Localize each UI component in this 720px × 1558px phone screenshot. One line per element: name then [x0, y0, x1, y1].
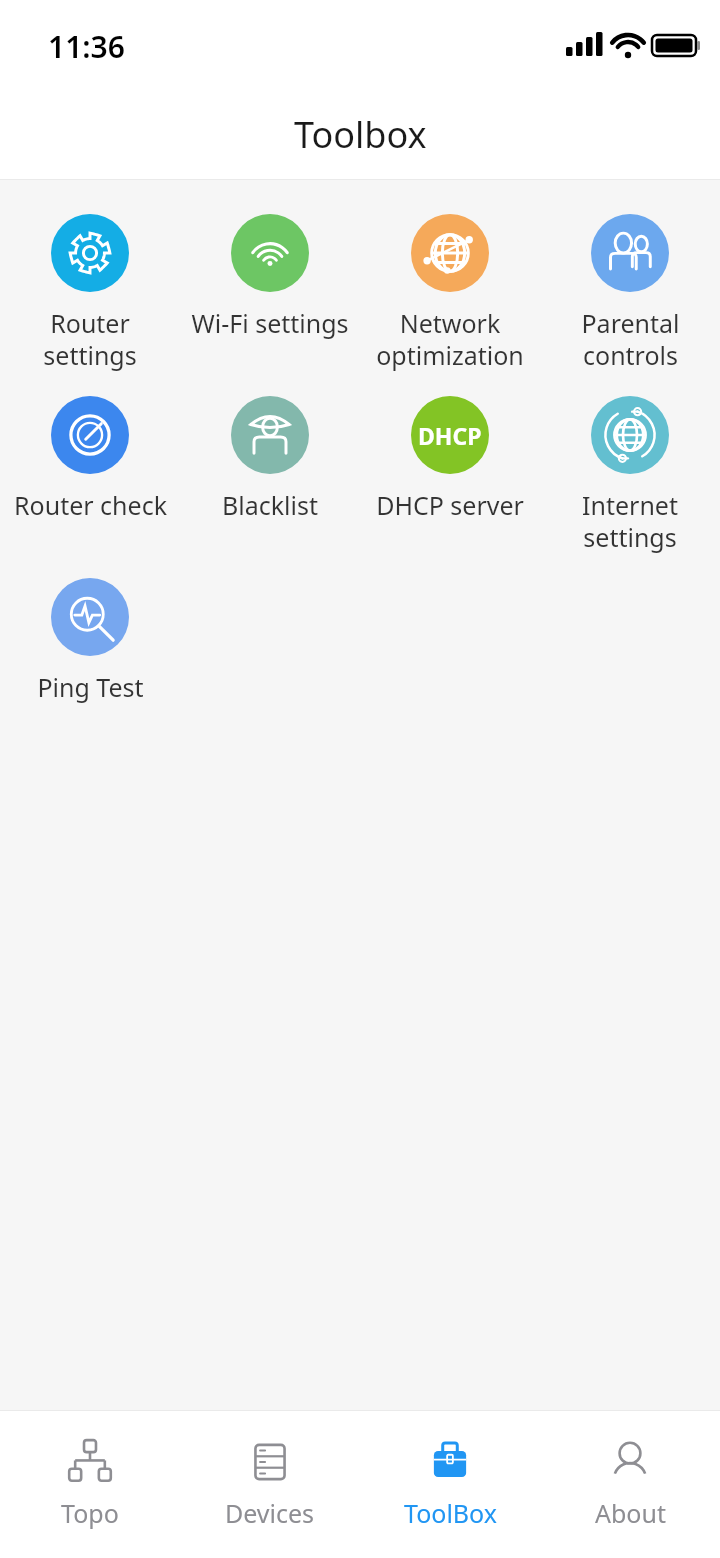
other: Devices [244, 1436, 296, 1488]
button[interactable]: DHCP [360, 396, 540, 522]
button[interactable]: Router settings [0, 214, 180, 372]
staticText: 11:36 [48, 26, 125, 67]
staticText: Ping Test [37, 670, 144, 704]
staticText: DHCP server [376, 488, 524, 522]
button[interactable]: Internet settings [540, 396, 720, 554]
staticText: Toolbox [294, 110, 427, 159]
staticText: Parental controls [581, 306, 680, 372]
staticText: ToolBox [404, 1496, 497, 1530]
button[interactable]: Parental controls [540, 214, 720, 372]
staticText: Internet settings [582, 488, 678, 554]
other: Topo [64, 1436, 116, 1488]
staticText: Devices [225, 1496, 315, 1530]
other: ToolBox [424, 1436, 476, 1488]
staticText: Router check [14, 488, 167, 522]
button[interactable]: Router check [0, 396, 180, 522]
button[interactable]: Ping Test [0, 578, 180, 704]
button[interactable]: Blacklist [180, 396, 360, 522]
staticText: Network optimization [376, 306, 524, 372]
button[interactable]: ToolBox [360, 1432, 540, 1534]
button[interactable]: About [540, 1432, 720, 1534]
staticText: Blacklist [222, 488, 318, 522]
staticText: Topo [61, 1496, 119, 1530]
staticText: Router settings [43, 306, 137, 372]
staticText: DHCP [418, 420, 482, 451]
button[interactable]: Wi-Fi settings [180, 214, 360, 340]
other: About [604, 1436, 656, 1488]
staticText: About [595, 1496, 666, 1530]
button[interactable]: Network optimization [360, 214, 540, 372]
staticText: Wi-Fi settings [191, 306, 349, 340]
button[interactable]: Devices [180, 1432, 360, 1534]
button[interactable]: Topo [0, 1432, 180, 1534]
